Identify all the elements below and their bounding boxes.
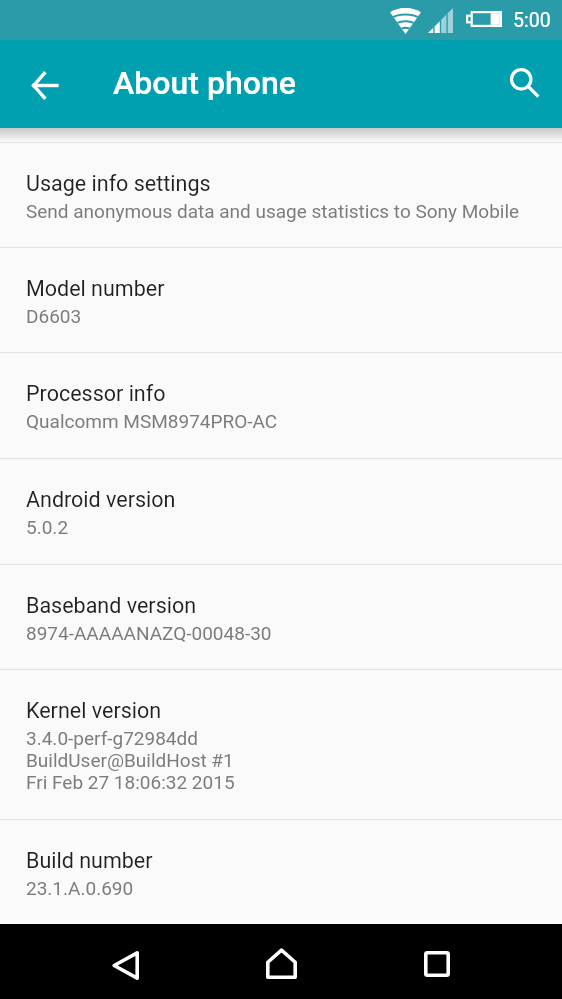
button[interactable]: Android version <box>0 459 562 564</box>
button[interactable]: Home <box>251 933 311 993</box>
button[interactable]: Search <box>496 55 552 111</box>
staticText: Qualcomm MSM8974PRO-AC <box>26 410 278 432</box>
staticText: Kernel version <box>26 698 162 723</box>
staticText: BuildUser@BuildHost #1 <box>26 749 234 771</box>
staticText: Send anonymous data and usage statistics… <box>26 200 520 222</box>
button[interactable]: Back <box>95 935 155 995</box>
staticText: 23.1.A.0.690 <box>26 877 134 899</box>
button[interactable]: Baseband version <box>0 565 562 669</box>
staticText: Fri Feb 27 18:06:32 2015 <box>26 771 235 793</box>
button[interactable]: Recent apps <box>407 934 467 994</box>
staticText: Processor info <box>26 381 166 406</box>
staticText: Android version <box>26 487 176 512</box>
staticText: Build number <box>26 848 153 873</box>
staticText: 5.0.2 <box>26 516 69 538</box>
staticText: 8974-AAAAANAZQ-00048-30 <box>26 622 272 644</box>
button[interactable]: Back <box>16 57 72 113</box>
button[interactable]: Build number <box>0 820 562 924</box>
staticText: 3.4.0-perf-g72984dd <box>26 727 198 749</box>
staticText: About phone <box>113 64 296 102</box>
button[interactable]: Processor info <box>0 353 562 458</box>
staticText: Baseband version <box>26 593 197 618</box>
button[interactable]: Kernel version <box>0 670 562 819</box>
staticText: 5:00 <box>513 9 551 32</box>
button[interactable]: Usage info settings <box>0 143 562 247</box>
staticText: Model number <box>26 276 165 301</box>
button[interactable]: Model number <box>0 248 562 352</box>
staticText: Usage info settings <box>26 171 211 196</box>
staticText: D6603 <box>26 305 82 327</box>
